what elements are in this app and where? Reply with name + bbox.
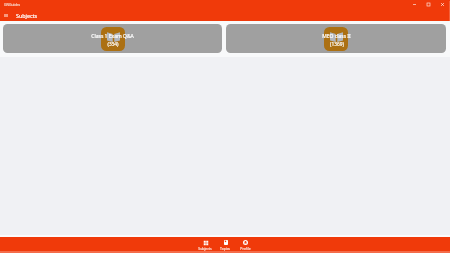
staticText: Subjects (16, 12, 38, 19)
button[interactable]: Close (435, 0, 449, 9)
button[interactable]: Subjects (195, 237, 215, 251)
staticText: (1369) (330, 41, 344, 48)
button[interactable]: Class 1 Exam Q&A (3, 24, 222, 53)
button[interactable]: Profile (235, 237, 255, 251)
staticText: Profile (240, 246, 251, 251)
staticText: MEO class II (322, 33, 351, 40)
staticText: Subjects (198, 246, 212, 251)
staticText: Topics (220, 246, 230, 251)
button[interactable]: Maximize (421, 0, 435, 9)
button[interactable]: Topics (215, 237, 235, 251)
staticText: GNGuides (4, 2, 21, 7)
button[interactable]: MEO class II (226, 24, 446, 53)
staticText: (354) (107, 41, 119, 48)
button[interactable]: Minimize (407, 0, 421, 9)
staticText: Class 1 Exam Q&A (91, 33, 134, 40)
button[interactable]: Menu (0, 10, 12, 21)
